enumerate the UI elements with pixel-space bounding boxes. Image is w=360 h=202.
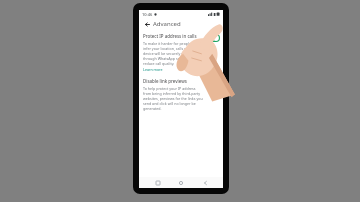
staticText: Disable link previews [143,78,187,84]
button[interactable]: Back [142,19,152,29]
staticText: To help protect your IP address from bei… [143,86,204,111]
button[interactable]: Recents [153,178,163,188]
button[interactable]: Back [200,178,210,188]
staticText: Protect IP address in calls [143,33,197,39]
button[interactable]: Protect IP address in calls [139,32,223,72]
button[interactable]: Learn more [143,67,163,72]
staticText: Advanced [153,20,181,28]
staticText: 10:46 [142,12,153,17]
staticText: To make it harder for people to infer yo… [143,41,204,66]
staticText: Learn more [143,67,163,72]
button[interactable]: Disable link previews [139,78,223,111]
button[interactable]: Toggle on [207,34,220,42]
button[interactable]: Home [176,178,186,188]
